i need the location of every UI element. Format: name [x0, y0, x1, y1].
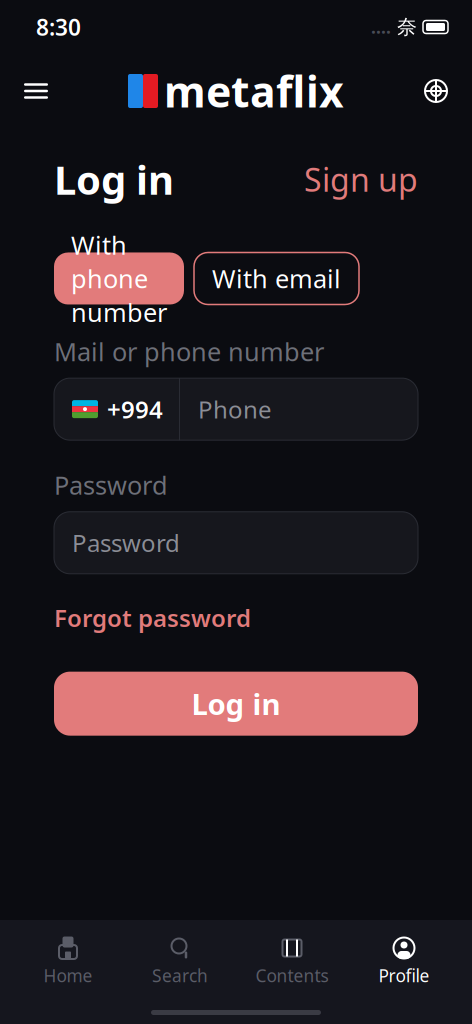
button[interactable]: Contents [236, 930, 348, 993]
staticText: 8:30 [36, 12, 81, 42]
staticText: +994 [107, 393, 163, 425]
staticText: Forgot password [54, 602, 251, 634]
staticText: Log in [54, 153, 174, 206]
button[interactable]: Home [12, 930, 124, 993]
button[interactable]: Search [124, 930, 236, 993]
staticText: Home [43, 964, 92, 987]
staticText: Phone [198, 393, 272, 425]
button[interactable]: Log in [54, 672, 418, 736]
staticText: With email [212, 262, 341, 295]
staticText: 奈 [397, 15, 417, 39]
button[interactable]: With phone number [54, 252, 184, 304]
staticText: Profile [378, 964, 429, 987]
staticText: Mail or phone number [54, 334, 324, 368]
staticText: .... [371, 15, 391, 38]
button[interactable]: Menu [8, 71, 64, 111]
staticText: Password [54, 468, 168, 502]
staticText: Search [152, 964, 208, 987]
staticText: Sign up [304, 158, 418, 200]
button[interactable]: With email [194, 252, 359, 304]
button[interactable]: Forgot password [54, 596, 251, 640]
staticText: With phone number [71, 228, 167, 329]
staticText: Log in [191, 684, 280, 723]
staticText: metaflix [164, 63, 344, 119]
staticText: Contents [255, 964, 328, 987]
staticText: Password [72, 527, 180, 559]
button[interactable]: Sign up [304, 152, 418, 206]
button[interactable]: Profile [348, 930, 460, 993]
button[interactable]: Language [408, 67, 464, 115]
